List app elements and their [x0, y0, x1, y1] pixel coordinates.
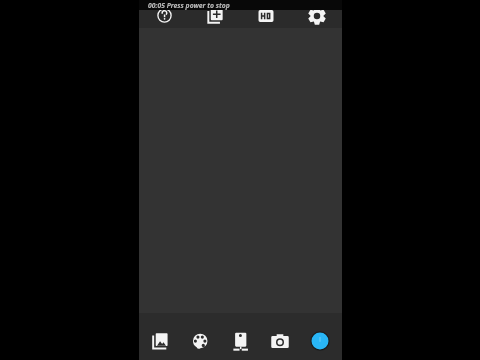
button[interactable]: HD quality — [240, 3, 291, 28]
staticText: 00:05 Press power to stop — [148, 1, 230, 10]
button[interactable]: Camera — [260, 327, 300, 355]
button[interactable]: Settings — [291, 3, 342, 28]
button[interactable]: Add to library — [189, 3, 240, 28]
button[interactable]: Themes — [180, 327, 220, 355]
button[interactable]: Record — [300, 327, 340, 355]
button[interactable]: Device — [220, 327, 260, 355]
button[interactable]: Help — [139, 3, 189, 28]
button[interactable]: Gallery — [139, 327, 180, 355]
